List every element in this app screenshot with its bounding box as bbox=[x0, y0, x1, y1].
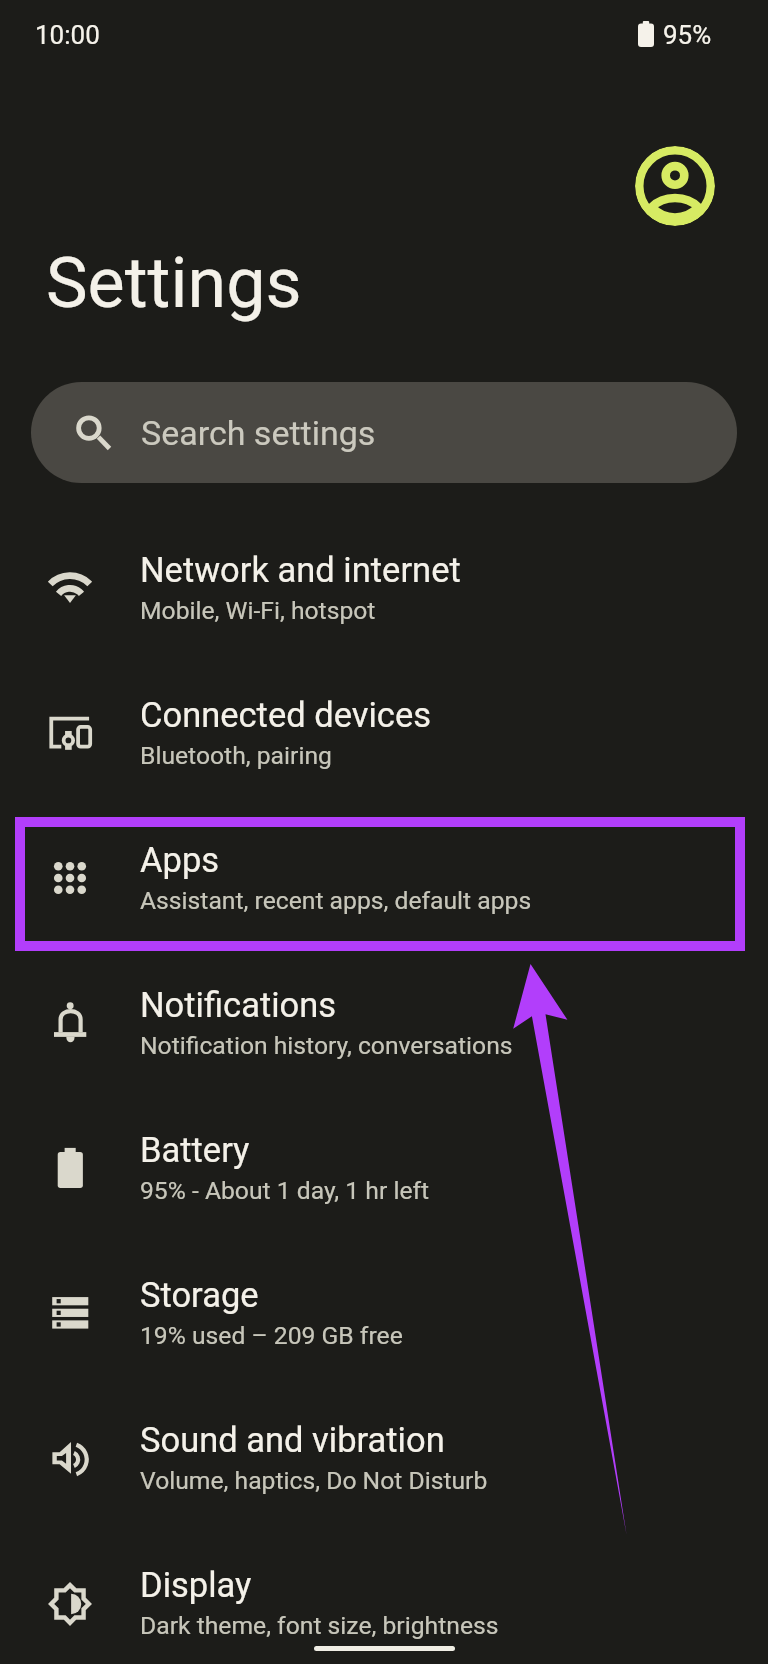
button[interactable]: Battery bbox=[0, 1095, 768, 1240]
staticText: Battery bbox=[140, 1130, 250, 1170]
staticText: Dark theme, font size, brightness bbox=[140, 1611, 499, 1640]
staticText: Mobile, Wi-Fi, hotspot bbox=[140, 596, 376, 625]
button[interactable]: Storage bbox=[0, 1240, 768, 1385]
staticText: Apps bbox=[140, 840, 220, 880]
staticText: Connected devices bbox=[140, 695, 431, 735]
staticText: Network and internet bbox=[140, 550, 461, 590]
button[interactable]: Notifications bbox=[0, 950, 768, 1095]
staticText: Storage bbox=[140, 1275, 259, 1315]
staticText: Search settings bbox=[141, 413, 376, 453]
staticText: Assistant, recent apps, default apps bbox=[140, 886, 532, 915]
button[interactable]: Connected devices bbox=[0, 660, 768, 805]
staticText: Display bbox=[140, 1565, 252, 1605]
staticText: 95% bbox=[663, 20, 712, 50]
staticText: Notifications bbox=[140, 985, 337, 1025]
button[interactable]: Network and internet bbox=[0, 515, 768, 660]
staticText: Sound and vibration bbox=[140, 1420, 445, 1460]
staticText: Settings bbox=[46, 242, 302, 324]
staticText: Volume, haptics, Do Not Disturb bbox=[140, 1466, 488, 1495]
staticText: Notification history, conversations bbox=[140, 1031, 513, 1060]
button[interactable]: Sound and vibration bbox=[0, 1385, 768, 1530]
button[interactable]: Apps bbox=[0, 805, 768, 950]
staticText: Bluetooth, pairing bbox=[140, 741, 332, 770]
staticText: 10:00 bbox=[35, 20, 100, 50]
staticText: 19% used – 209 GB free bbox=[140, 1321, 403, 1350]
button[interactable]: Account bbox=[635, 146, 715, 226]
button[interactable]: Display bbox=[0, 1530, 768, 1664]
button[interactable]: Search settings bbox=[31, 382, 737, 483]
staticText: 95% - About 1 day, 1 hr left bbox=[140, 1176, 430, 1205]
